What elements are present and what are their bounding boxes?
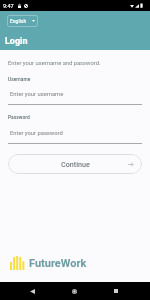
button[interactable]: Back xyxy=(21,282,43,300)
staticText: Username xyxy=(8,76,31,82)
button[interactable]: Continue xyxy=(8,154,142,174)
staticText: Enter your username xyxy=(10,91,64,98)
staticText: 9:47 xyxy=(3,3,14,9)
staticText: Enter your password xyxy=(10,130,63,137)
staticText: English xyxy=(10,18,27,24)
staticText: Enter your username and password. xyxy=(8,60,101,67)
staticText: Continue xyxy=(61,160,90,168)
button[interactable]: Recents xyxy=(105,282,127,300)
button[interactable]: Home xyxy=(63,282,85,300)
button[interactable]: English xyxy=(7,15,38,27)
staticText: Login xyxy=(5,36,28,47)
staticText: Password xyxy=(8,114,30,120)
staticText: FutureWork xyxy=(29,257,87,270)
